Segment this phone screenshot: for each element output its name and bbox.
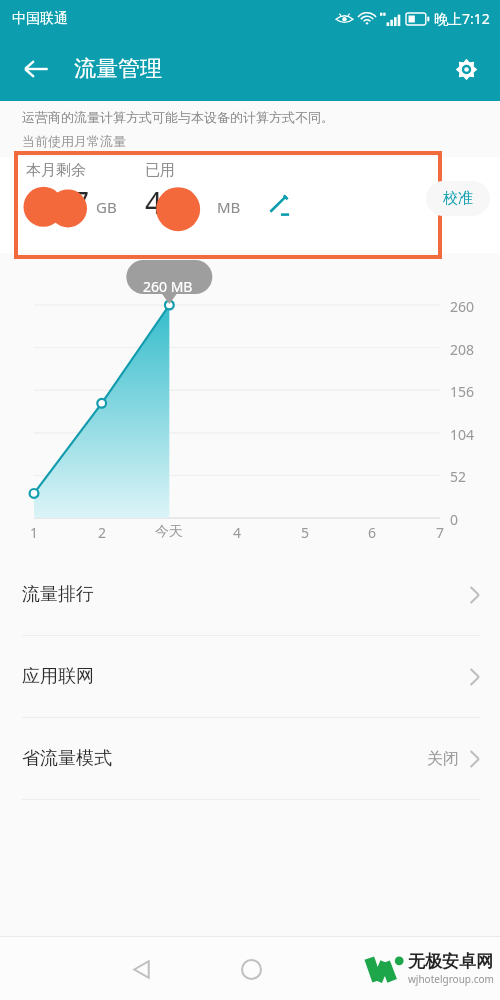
button[interactable]: 省流量模式 [0, 718, 500, 799]
staticText: 260 [450, 297, 475, 316]
staticText: 运营商的流量计算方式可能与本设备的计算方式不同。 [22, 109, 334, 125]
staticText: 流量排行 [22, 583, 94, 606]
staticText: 4 9 [145, 182, 195, 222]
staticText: 7 [72, 182, 90, 222]
staticText: 中国联通 [12, 10, 68, 28]
button[interactable]: 流量排行 [0, 554, 500, 635]
staticText: 应用联网 [22, 665, 94, 688]
staticText: 晚上7:12 [434, 9, 490, 28]
staticText: 104 [450, 425, 475, 444]
staticText: 156 [450, 382, 475, 401]
staticText: 2 [98, 523, 107, 542]
staticText: wjhotelgroup.com [408, 972, 494, 986]
staticText: 校准 [443, 189, 473, 208]
staticText: 今天 [155, 523, 183, 541]
staticText: 无极安卓网 [408, 951, 493, 972]
staticText: 0 [450, 510, 459, 529]
staticText: 260 MB [143, 277, 193, 296]
staticText: 52 [450, 467, 467, 486]
staticText: 4 [233, 523, 242, 542]
staticText: GB [96, 197, 117, 217]
button[interactable]: Settings [442, 45, 490, 93]
button[interactable]: Edit [259, 185, 299, 225]
button[interactable]: 应用联网 [0, 636, 500, 717]
staticText: 流量管理 [74, 55, 162, 83]
staticText: 208 [450, 340, 475, 359]
staticText: 1 [30, 523, 39, 542]
staticText: 已用 [145, 161, 175, 180]
staticText: MB [217, 197, 241, 217]
staticText: 本月剩余 [26, 161, 86, 180]
staticText: 关闭 [427, 749, 459, 769]
staticText: 省流量模式 [22, 747, 112, 770]
staticText: 当前使用月常流量 [22, 133, 126, 149]
button[interactable] [0, 157, 500, 253]
staticText: 6 [368, 523, 377, 542]
staticText: 5 [301, 523, 310, 542]
staticText: 7 [436, 523, 445, 542]
button[interactable]: 校准 [426, 181, 490, 216]
button[interactable]: Back [12, 45, 60, 93]
button[interactable]: Back [117, 945, 165, 993]
button[interactable]: Home [227, 945, 275, 993]
